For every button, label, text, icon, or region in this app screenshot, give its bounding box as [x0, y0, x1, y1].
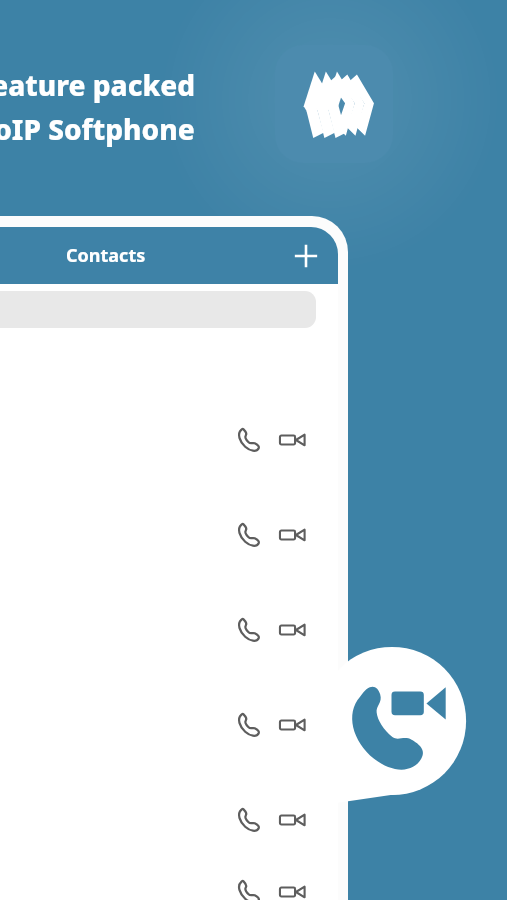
button[interactable]: Video call [278, 616, 306, 644]
button[interactable]: Video call [278, 878, 306, 900]
button[interactable]: Call [0, 392, 338, 487]
button[interactable]: Call [0, 867, 338, 900]
button[interactable]: Video call [278, 521, 306, 549]
button[interactable]: Call [234, 806, 262, 834]
button[interactable]: Call [234, 616, 262, 644]
button[interactable]: Call [0, 487, 338, 582]
staticText: VoIP Softphone [0, 110, 195, 148]
button[interactable]: App icon [275, 45, 393, 163]
button[interactable]: Call [234, 711, 262, 739]
button[interactable]: Call [0, 582, 338, 677]
button[interactable]: Call [234, 521, 262, 549]
button[interactable]: Call [0, 772, 338, 867]
button[interactable]: Call [234, 426, 262, 454]
staticText: Contacts [66, 243, 146, 268]
button[interactable]: Call [234, 878, 262, 900]
button[interactable]: Add contact [288, 238, 324, 274]
button[interactable]: New call [314, 650, 470, 806]
button[interactable]: Video call [278, 806, 306, 834]
staticText: Feature packed [0, 66, 196, 104]
button[interactable]: Video call [278, 426, 306, 454]
button[interactable]: Call [0, 677, 338, 772]
button[interactable]: Video call [278, 711, 306, 739]
